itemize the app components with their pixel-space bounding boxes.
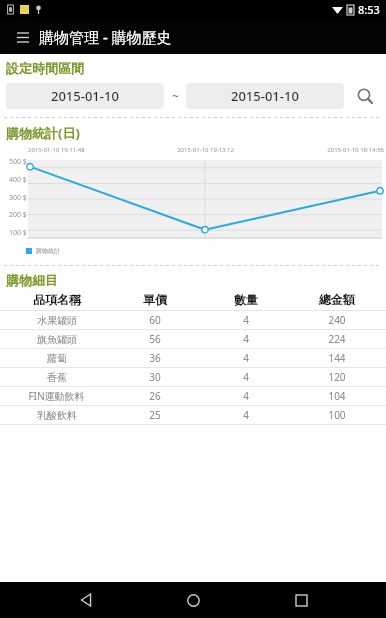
- staticText: 2015-01-10: [231, 87, 299, 105]
- staticText: 2015-01-10 19:13:12: [146, 146, 265, 154]
- button[interactable]: 蘿蔔: [0, 349, 386, 367]
- button[interactable]: 乳酸飲料: [0, 406, 386, 424]
- button[interactable]: 水果罐頭: [0, 311, 386, 329]
- staticText: 26: [149, 389, 161, 403]
- staticText: 104: [328, 389, 346, 403]
- staticText: 8:53: [358, 2, 380, 17]
- staticText: 56: [149, 332, 161, 346]
- button[interactable]: 香蕉: [0, 368, 386, 386]
- staticText: 100 $: [9, 228, 27, 238]
- button[interactable]: Recent apps: [279, 582, 323, 618]
- button[interactable]: 2015-01-10: [6, 83, 164, 109]
- staticText: 4: [243, 332, 249, 346]
- staticText: 4: [243, 370, 249, 384]
- staticText: 100: [328, 408, 346, 422]
- staticText: 2015-01-10 19:11:48: [28, 146, 146, 154]
- staticText: 設定時間區間: [6, 60, 84, 76]
- staticText: 4: [243, 351, 249, 365]
- button[interactable]: Back: [64, 582, 108, 618]
- staticText: FIN運動飲料: [28, 389, 85, 403]
- staticText: 30: [149, 370, 161, 384]
- button[interactable]: 旗魚罐頭: [0, 330, 386, 348]
- staticText: 購物管理 - 購物歷史: [39, 27, 172, 47]
- staticText: 4: [243, 313, 249, 327]
- staticText: 4: [243, 408, 249, 422]
- button[interactable]: Search: [350, 81, 380, 111]
- staticText: 400 $: [9, 175, 27, 185]
- staticText: 25: [149, 408, 161, 422]
- button[interactable]: FIN運動飲料: [0, 387, 386, 405]
- staticText: 224: [328, 332, 346, 346]
- staticText: 購物統計(日): [6, 124, 80, 142]
- staticText: 水果罐頭: [37, 314, 77, 327]
- staticText: 240: [328, 313, 346, 327]
- staticText: 4: [243, 389, 249, 403]
- staticText: 香蕉: [47, 371, 67, 384]
- button[interactable]: Home: [171, 582, 215, 618]
- staticText: 數量: [234, 292, 258, 307]
- staticText: 144: [328, 351, 346, 365]
- staticText: 總金額: [319, 292, 355, 307]
- staticText: 2015-01-10: [51, 87, 119, 105]
- staticText: ~: [172, 88, 179, 104]
- button[interactable]: 2015-01-10: [186, 83, 344, 109]
- staticText: 36: [149, 351, 161, 365]
- staticText: 60: [149, 313, 161, 327]
- staticText: 300 $: [9, 193, 27, 203]
- staticText: 品項名稱: [33, 292, 81, 307]
- staticText: 單價: [143, 292, 167, 307]
- staticText: 乳酸飲料: [37, 409, 77, 422]
- button[interactable]: Open navigation menu: [10, 24, 36, 50]
- staticText: 120: [328, 370, 346, 384]
- staticText: 購物統計: [36, 247, 60, 255]
- staticText: 200 $: [9, 210, 27, 220]
- staticText: 購物細目: [6, 272, 58, 288]
- staticText: 500 $: [9, 157, 27, 167]
- staticText: 旗魚罐頭: [37, 333, 77, 346]
- staticText: 2015-01-10 19:14:56: [265, 146, 384, 154]
- staticText: 蘿蔔: [47, 352, 67, 365]
